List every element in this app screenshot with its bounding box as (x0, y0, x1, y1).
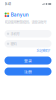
staticText: 密码 (10, 41, 16, 46)
button[interactable]: 登录 (4, 56, 51, 64)
staticText: 注册 (24, 69, 32, 74)
button[interactable]: 注册 (4, 67, 51, 75)
staticText: 登录 (24, 58, 32, 63)
staticText: Banyun (11, 12, 29, 18)
button[interactable]: 密码 (4, 40, 51, 47)
button[interactable]: 手机号 (4, 30, 51, 37)
staticText: 9:41 (4, 2, 11, 6)
staticText: 欢迎使用智慧校园，请登录账号 (4, 20, 46, 24)
staticText: 手机号 (10, 31, 19, 36)
button[interactable]: 忘记密码？ (36, 48, 51, 53)
staticText: 忘记密码？ (36, 48, 51, 53)
